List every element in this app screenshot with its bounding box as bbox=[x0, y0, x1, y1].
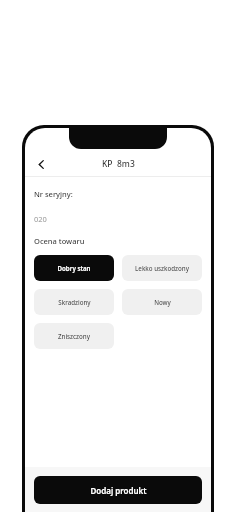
button[interactable]: Dodaj produkt bbox=[34, 476, 202, 504]
button[interactable]: Dobry stan bbox=[34, 255, 114, 281]
button[interactable]: 020 bbox=[34, 212, 202, 225]
staticText: Skradziony bbox=[58, 298, 91, 306]
button[interactable]: Zniszczony bbox=[34, 323, 114, 349]
staticText: Ocena towaru bbox=[34, 236, 85, 246]
button[interactable]: Nowy bbox=[122, 289, 202, 315]
button[interactable]: Skradziony bbox=[34, 289, 114, 315]
staticText: KP 8m3 bbox=[102, 158, 135, 170]
staticText: Dodaj produkt bbox=[90, 485, 147, 496]
button[interactable]: Lekko uszkodzony bbox=[122, 255, 202, 281]
staticText: Nr seryjny: bbox=[34, 189, 73, 199]
staticText: 020 bbox=[34, 214, 47, 224]
staticText: Lekko uszkodzony bbox=[135, 264, 189, 272]
staticText: Dobry stan bbox=[57, 264, 91, 272]
button[interactable]: Back bbox=[31, 154, 51, 174]
staticText: Nowy bbox=[154, 298, 171, 306]
staticText: Zniszczony bbox=[58, 332, 90, 340]
